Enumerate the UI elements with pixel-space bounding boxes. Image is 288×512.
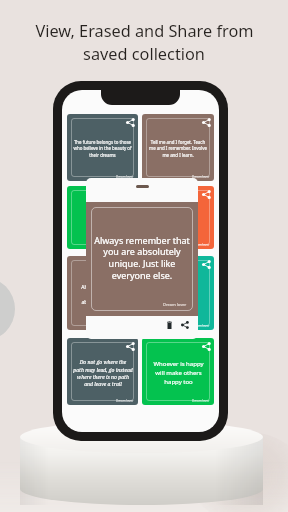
other: Share: [202, 260, 211, 269]
staticText: In the dark times we sing: [90, 208, 115, 229]
other: Share: [202, 190, 211, 199]
button[interactable]: Whoever is happy will make others happy …: [142, 338, 214, 405]
staticText: Only a life lived for others is a life w…: [159, 208, 198, 229]
button[interactable]: Tell me and I forget. Teach me and I rem…: [142, 114, 214, 181]
staticText: The future belongs to those who believe …: [73, 139, 132, 158]
staticText: View, Erased and Share from: [35, 20, 254, 42]
other: Share: [202, 118, 211, 127]
staticText: Everything you can imagine is real: [160, 284, 196, 305]
button[interactable]: Delete: [161, 317, 177, 333]
staticText: Dream lover: [163, 302, 187, 307]
staticText: Whoever is happy will make others happy …: [153, 360, 204, 386]
staticText: Do not go where the path may lead, go in…: [73, 359, 133, 387]
staticText: Dream lover: [116, 243, 134, 247]
button[interactable]: Only a life lived for others is a life w…: [142, 186, 214, 249]
other: Share: [181, 321, 189, 329]
staticText: Dream lover: [192, 399, 210, 403]
staticText: Dream lover: [116, 175, 134, 179]
button[interactable]: The future belongs to those who believe …: [67, 114, 138, 181]
other: Share: [126, 118, 135, 127]
button[interactable]: In the dark times we sing: [67, 186, 138, 249]
staticText: Always remember that you are absolutely …: [81, 284, 124, 305]
staticText: Dream lover: [192, 243, 210, 247]
button[interactable]: Do not go where the path may lead, go in…: [67, 338, 138, 405]
staticText: Always remember that you are absolutely …: [94, 234, 190, 282]
staticText: Dream lover: [116, 399, 134, 403]
staticText: Dream lover: [192, 324, 210, 328]
staticText: Dream lover: [192, 175, 210, 179]
other: Share: [202, 342, 211, 351]
staticText: Tell me and I forget. Teach me and I rem…: [149, 139, 207, 158]
button[interactable]: Share: [177, 317, 193, 333]
other: Share: [126, 342, 135, 351]
button[interactable]: Everything you can imagine is real: [142, 256, 214, 330]
other: Delete: [167, 321, 172, 329]
other: Share: [126, 260, 135, 269]
staticText: saved collection: [83, 43, 205, 65]
button[interactable]: Always remember that you are absolutely …: [67, 256, 138, 330]
